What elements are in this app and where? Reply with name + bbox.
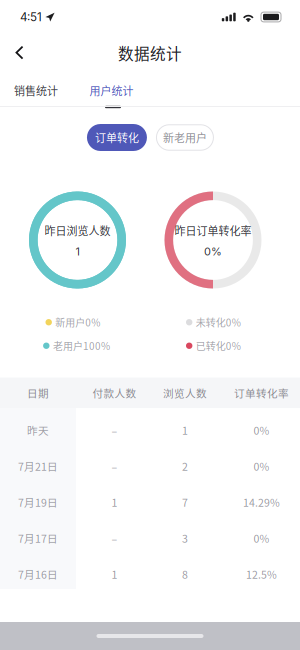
- staticText: –: [111, 458, 117, 474]
- staticText: 昨天: [27, 422, 49, 438]
- staticText: 1: [75, 245, 79, 258]
- staticText: 已转化0%: [196, 338, 241, 353]
- button[interactable]: 订单转化: [87, 124, 147, 151]
- staticText: 昨日浏览人数: [44, 222, 110, 238]
- staticText: 新老用户: [163, 129, 207, 145]
- staticText: 新用户0%: [55, 315, 100, 329]
- staticText: –: [111, 422, 117, 438]
- staticText: 7月16日: [18, 566, 58, 582]
- staticText: 0%: [204, 245, 222, 258]
- staticText: 销售统计: [14, 82, 58, 98]
- staticText: 订单转化: [95, 129, 139, 145]
- staticText: 浏览人数: [163, 385, 207, 400]
- button[interactable]: 新老用户: [156, 125, 213, 150]
- staticText: 0%: [253, 422, 269, 438]
- staticText: 7月19日: [18, 494, 58, 510]
- staticText: 7月21日: [18, 458, 58, 474]
- button[interactable]: 销售统计: [5, 73, 67, 117]
- staticText: 1: [111, 566, 117, 582]
- button[interactable]: Back: [0, 36, 39, 70]
- staticText: 14.29%: [243, 494, 280, 510]
- staticText: 日期: [27, 385, 49, 400]
- staticText: 订单转化率: [234, 385, 289, 400]
- staticText: 4:51: [20, 10, 42, 24]
- staticText: 用户统计: [89, 82, 133, 98]
- staticText: 3: [182, 530, 188, 546]
- staticText: 2: [182, 458, 188, 474]
- staticText: 12.5%: [246, 566, 277, 582]
- staticText: 1: [111, 494, 117, 510]
- staticText: 0%: [253, 530, 269, 546]
- staticText: –: [111, 530, 117, 546]
- button[interactable]: 用户统计: [80, 73, 142, 117]
- staticText: 老用户100%: [53, 338, 110, 353]
- staticText: 7月17日: [18, 530, 58, 546]
- staticText: 0%: [253, 458, 269, 474]
- staticText: 数据统计: [118, 42, 182, 64]
- staticText: 昨日订单转化率: [174, 222, 251, 238]
- staticText: 1: [182, 422, 188, 438]
- staticText: 7: [182, 494, 188, 510]
- staticText: 8: [182, 566, 188, 582]
- staticText: 付款人数: [92, 385, 136, 400]
- staticText: 未转化0%: [196, 315, 241, 329]
